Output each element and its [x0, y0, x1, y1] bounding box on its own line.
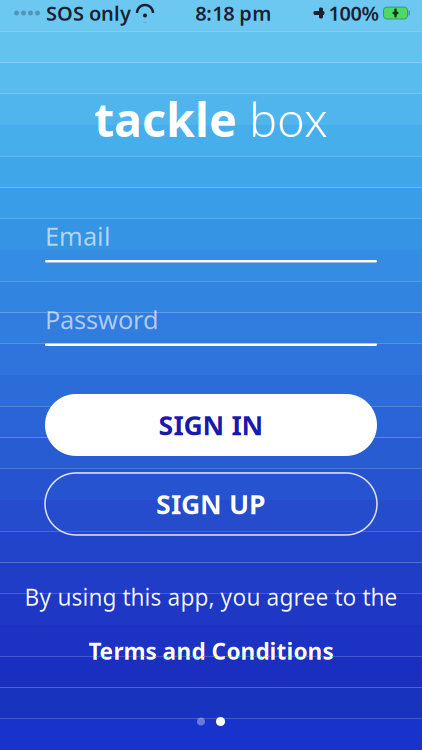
staticText: Password: [45, 303, 159, 336]
staticText: SIGN UP: [156, 486, 266, 522]
staticText: 100%: [328, 0, 379, 26]
staticText: By using this app, you agree to the: [24, 582, 397, 612]
button[interactable]: SIGN IN: [45, 394, 377, 456]
staticText: tackle: [94, 88, 237, 150]
staticText: 8:18 pm: [195, 0, 271, 26]
staticText: Email: [45, 219, 111, 253]
button[interactable]: Terms and Conditions: [78, 632, 343, 670]
staticText: SIGN IN: [158, 407, 263, 443]
staticText: Terms and Conditions: [88, 636, 333, 666]
staticText: box: [237, 88, 328, 150]
button[interactable]: SIGN UP: [45, 473, 377, 535]
staticText: SOS only: [46, 0, 131, 26]
